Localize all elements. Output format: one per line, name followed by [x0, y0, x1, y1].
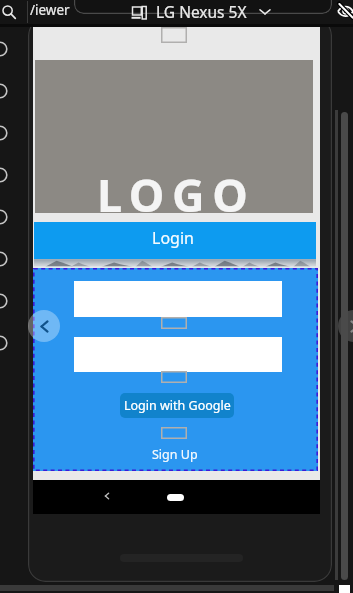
- staticText: Login with Google: [124, 397, 231, 414]
- button[interactable]: Sign Up: [152, 446, 198, 463]
- button[interactable]: Search: [0, 3, 18, 21]
- button[interactable]: Next screen: [338, 310, 353, 342]
- staticText: LOGO: [97, 164, 256, 225]
- button[interactable]: Login: [34, 222, 316, 259]
- staticText: Login: [152, 227, 194, 249]
- button[interactable]: [74, 337, 282, 372]
- button[interactable]: Hide preview: [336, 1, 353, 20]
- button[interactable]: Home: [167, 494, 184, 501]
- button[interactable]: Login with Google: [120, 393, 234, 418]
- button[interactable]: Back: [99, 488, 115, 504]
- button[interactable]: Previous screen: [28, 310, 60, 342]
- button[interactable]: [74, 0, 332, 14]
- staticText: /iewer: [30, 1, 70, 19]
- staticText: LG Nexus 5X: [156, 1, 247, 22]
